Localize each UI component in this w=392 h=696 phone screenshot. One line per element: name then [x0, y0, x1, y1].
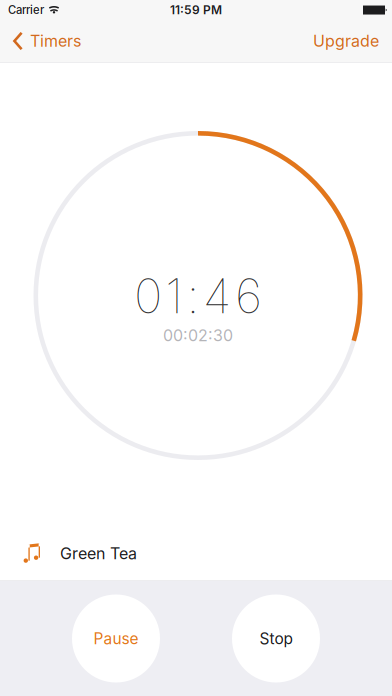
- staticText: 6: [235, 267, 262, 325]
- staticText: :: [186, 267, 199, 325]
- staticText: Upgrade: [313, 31, 379, 51]
- staticText: Green Tea: [60, 544, 137, 563]
- staticText: 1: [165, 267, 183, 325]
- staticText: 00:02:30: [163, 326, 233, 345]
- staticText: Timers: [30, 31, 81, 51]
- staticText: 0: [134, 267, 162, 325]
- button[interactable]: Pause: [72, 594, 160, 682]
- staticText: Carrier: [8, 3, 44, 17]
- staticText: Pause: [93, 629, 138, 648]
- button[interactable]: Upgrade: [299, 20, 392, 62]
- button[interactable]: Timers: [0, 20, 93, 62]
- staticText: Stop: [259, 629, 292, 648]
- staticText: 4: [203, 267, 232, 325]
- button[interactable]: Stop: [232, 594, 320, 682]
- staticText: 11:59 PM: [170, 3, 222, 17]
